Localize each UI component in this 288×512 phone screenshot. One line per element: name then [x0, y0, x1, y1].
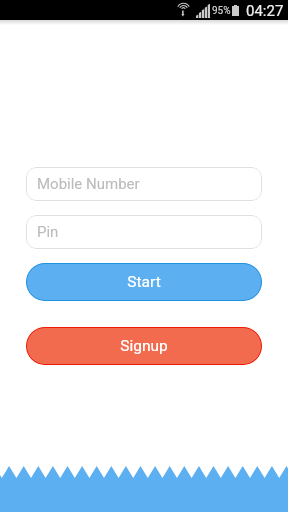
- staticText: 95%: [212, 5, 231, 17]
- staticText: Start: [127, 273, 161, 291]
- staticText: 04:27: [246, 2, 284, 20]
- staticText: Signup: [120, 337, 168, 355]
- button[interactable]: Pin: [26, 215, 262, 249]
- button[interactable]: Mobile Number: [26, 167, 262, 201]
- button[interactable]: Start: [26, 263, 262, 301]
- staticText: Mobile Number: [37, 175, 140, 193]
- button[interactable]: Signup: [26, 327, 262, 365]
- staticText: Pin: [37, 223, 59, 241]
